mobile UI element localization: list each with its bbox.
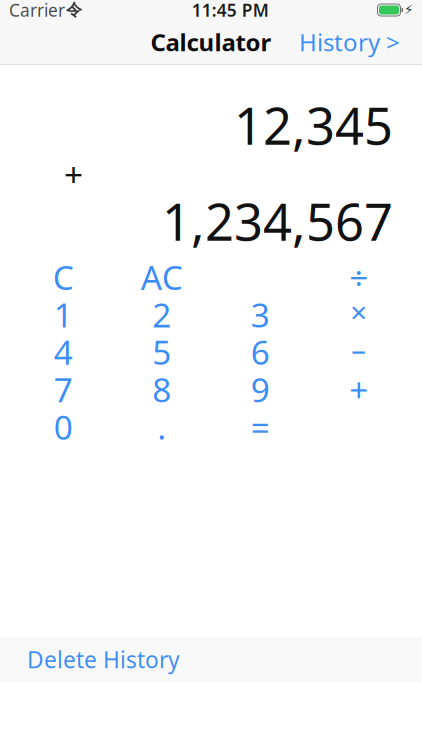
button[interactable]: Delete History	[0, 637, 422, 682]
staticText: ⚡︎	[404, 2, 413, 17]
staticText: 8	[152, 367, 171, 405]
staticText: +	[349, 367, 368, 405]
staticText: C	[53, 255, 74, 292]
staticText: History >	[299, 26, 400, 58]
button[interactable]: 0	[14, 405, 112, 442]
staticText: Carrier	[9, 0, 65, 21]
staticText: 3	[251, 292, 270, 330]
staticText: 7	[54, 367, 73, 405]
button[interactable]: History >	[289, 18, 410, 66]
staticText: Delete History	[27, 644, 180, 674]
button[interactable]: ×	[309, 292, 408, 330]
button[interactable]: 3	[211, 292, 309, 330]
staticText: .	[157, 405, 166, 442]
button[interactable]: 6	[211, 330, 309, 367]
staticText: 4	[54, 330, 73, 367]
button[interactable]: 1	[14, 292, 112, 330]
staticText: 9	[251, 367, 270, 405]
button[interactable]: AC	[112, 255, 211, 292]
staticText: =	[251, 405, 270, 442]
staticText: +	[64, 152, 83, 196]
button[interactable]: ÷	[309, 255, 408, 292]
button[interactable]: =	[211, 405, 309, 442]
button[interactable]: 5	[112, 330, 211, 367]
staticText: Calculator	[150, 26, 271, 58]
staticText: 5	[152, 330, 171, 367]
staticText: 12,345	[234, 91, 393, 159]
button[interactable]: +	[309, 367, 408, 405]
staticText: ×	[350, 292, 367, 330]
button[interactable]: 7	[14, 367, 112, 405]
button[interactable]: 4	[14, 330, 112, 367]
button[interactable]: 8	[112, 367, 211, 405]
staticText: 6	[251, 330, 270, 367]
staticText: –	[351, 330, 366, 367]
button[interactable]: –	[309, 330, 408, 367]
button[interactable]: C	[14, 255, 112, 292]
button[interactable]: 9	[211, 367, 309, 405]
staticText: 令	[66, 0, 82, 20]
staticText: 1,234,567	[162, 187, 393, 255]
button[interactable]: .	[112, 405, 211, 442]
staticText: ÷	[349, 255, 368, 292]
staticText: 1	[54, 292, 73, 330]
button[interactable]: 2	[112, 292, 211, 330]
staticText: 2	[152, 292, 171, 330]
staticText: 11:45 PM	[192, 0, 269, 21]
staticText: AC	[141, 255, 183, 292]
staticText: 0	[54, 405, 73, 442]
